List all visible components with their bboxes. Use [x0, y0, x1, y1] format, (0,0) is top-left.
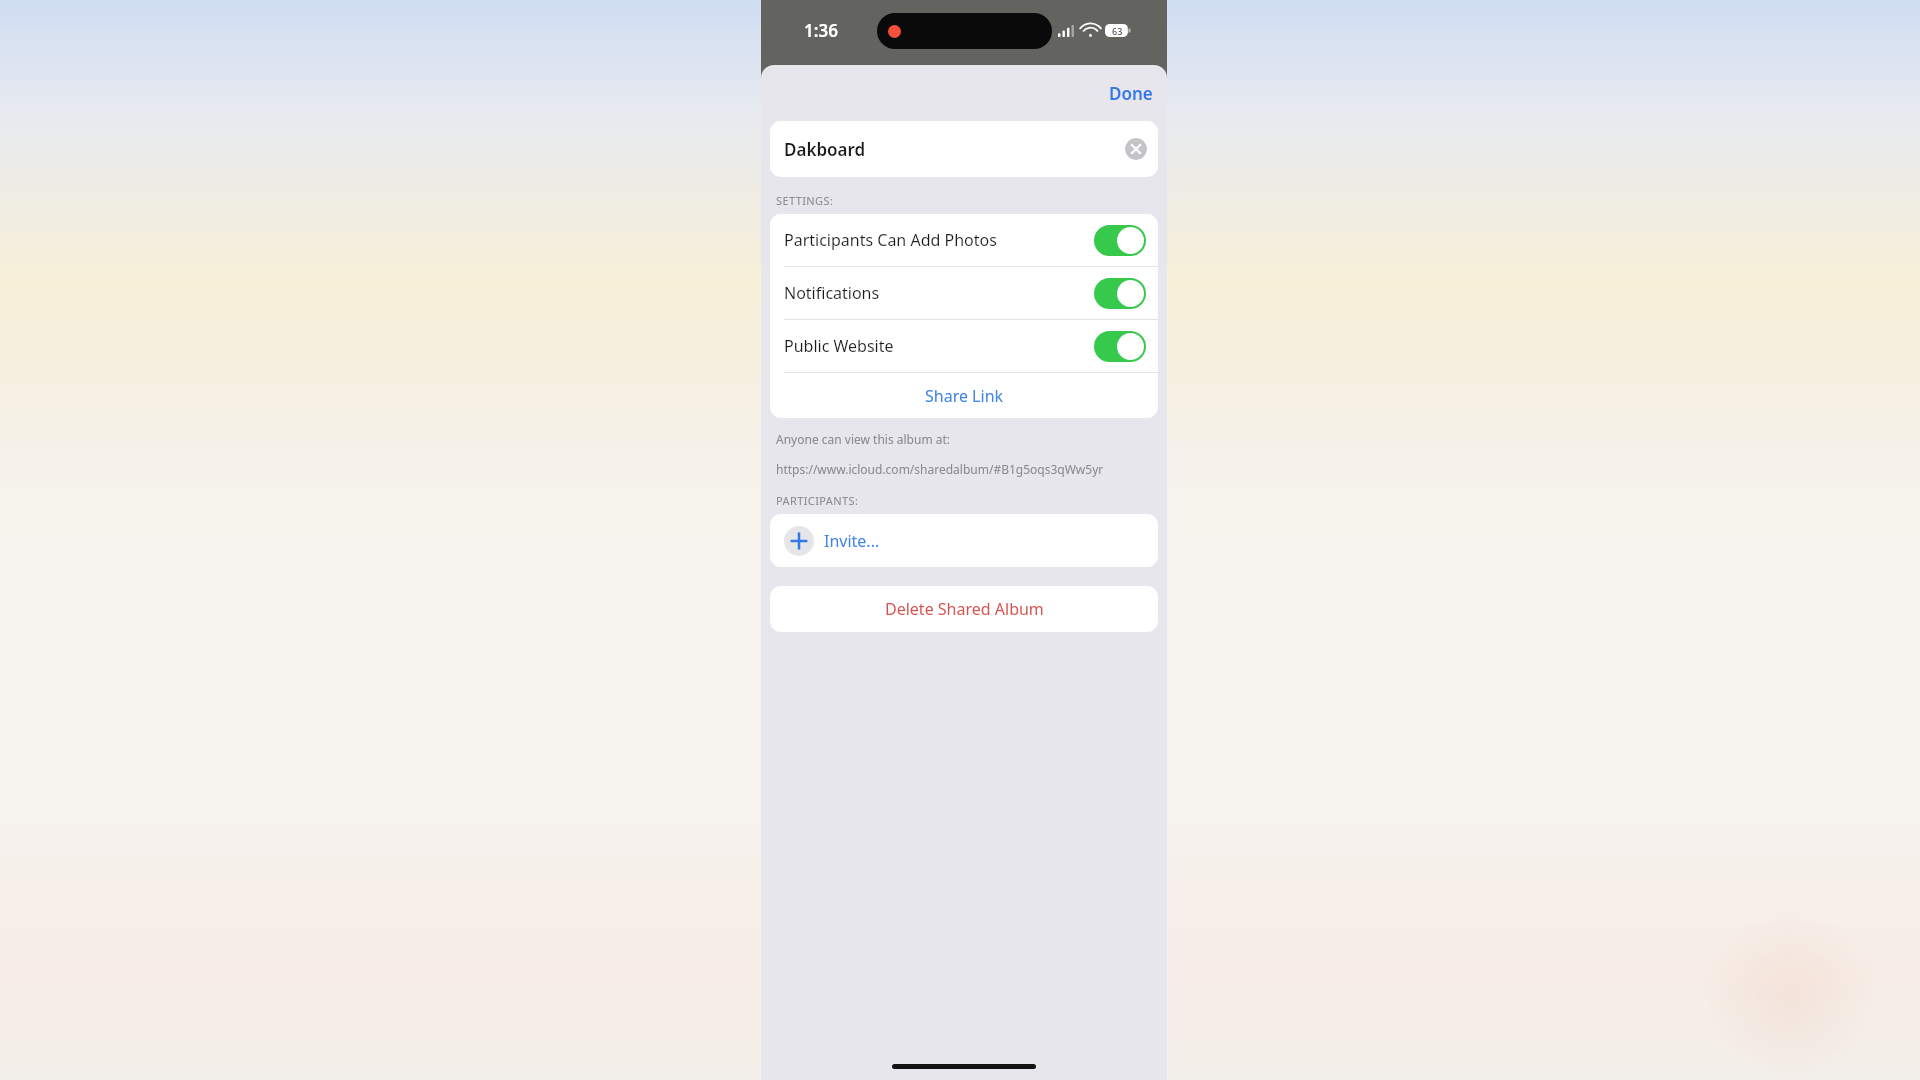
- button[interactable]: Public Website: [770, 320, 1158, 372]
- button[interactable]: Clear text: [1125, 138, 1147, 160]
- staticText: Dakboard: [784, 138, 866, 161]
- button[interactable]: Delete Shared Album: [770, 586, 1158, 632]
- staticText: Notifications: [784, 282, 1094, 304]
- button[interactable]: Toggle on: [1094, 225, 1146, 256]
- button[interactable]: Participants Can Add Photos: [770, 214, 1158, 266]
- button[interactable]: Toggle on: [1094, 278, 1146, 309]
- staticText: Anyone can view this album at:: [776, 431, 951, 447]
- staticText: PARTICIPANTS:: [776, 493, 859, 508]
- staticText: SETTINGS:: [776, 193, 834, 208]
- button[interactable]: Toggle on: [1094, 331, 1146, 362]
- button[interactable]: Dakboard: [770, 121, 1158, 177]
- button[interactable]: Invite...: [770, 514, 1158, 567]
- staticText: Delete Shared Album: [885, 598, 1044, 620]
- staticText: https://www.icloud.com/sharedalbum/#B1g5…: [776, 461, 1104, 477]
- button[interactable]: Share Link: [770, 373, 1158, 418]
- staticText: Share Link: [925, 385, 1004, 407]
- staticText: 63: [1112, 25, 1123, 37]
- button[interactable]: Notifications: [770, 267, 1158, 319]
- staticText: Invite...: [824, 530, 880, 552]
- staticText: 1:36: [804, 19, 838, 42]
- button[interactable]: Done: [1095, 76, 1167, 111]
- staticText: Participants Can Add Photos: [784, 229, 1094, 251]
- staticText: Public Website: [784, 335, 1094, 357]
- staticText: Done: [1109, 82, 1153, 105]
